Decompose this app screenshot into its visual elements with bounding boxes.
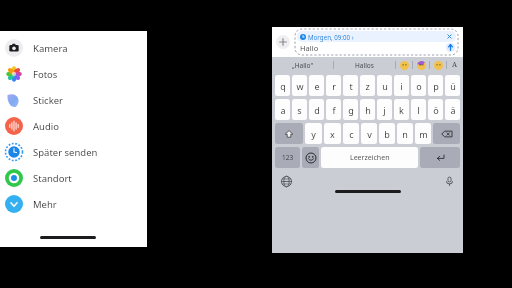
staticText: m	[419, 128, 428, 140]
button[interactable]: Diktieren	[442, 174, 456, 188]
button[interactable]: Morgen, 09:00 ›	[295, 29, 458, 55]
button[interactable]: x	[324, 123, 341, 144]
staticText: Audio	[33, 120, 59, 133]
staticText: ü	[450, 80, 456, 92]
button[interactable]: Leerzeichen	[321, 147, 418, 168]
button[interactable]: Sticker	[0, 87, 147, 113]
button[interactable]: Emoji	[430, 57, 446, 73]
staticText: d	[314, 104, 320, 116]
staticText: s	[297, 104, 302, 116]
staticText: h	[365, 104, 371, 116]
button[interactable]: g	[343, 99, 358, 120]
button[interactable]: Fotos	[0, 61, 147, 87]
staticText: Sticker	[33, 94, 64, 107]
staticText: Hallos	[355, 61, 374, 70]
button[interactable]: Eingabe	[420, 147, 460, 168]
staticText: ö	[433, 104, 439, 116]
staticText: y	[311, 128, 316, 140]
button[interactable]: Emoji	[413, 57, 429, 73]
staticText: c	[349, 128, 354, 140]
staticText: ä	[450, 104, 456, 116]
staticText: r	[332, 80, 336, 92]
button[interactable]: ö	[428, 99, 443, 120]
button[interactable]: r	[326, 75, 341, 96]
button[interactable]: e	[309, 75, 324, 96]
button[interactable]: Audio	[0, 113, 147, 139]
staticText: p	[433, 80, 439, 92]
staticText: Mehr	[33, 198, 57, 211]
button[interactable]: c	[343, 123, 359, 144]
button[interactable]: u	[377, 75, 392, 96]
button[interactable]: y	[305, 123, 322, 144]
staticText: q	[280, 80, 286, 92]
button[interactable]: p	[428, 75, 443, 96]
staticText: a	[280, 104, 286, 116]
staticText: Fotos	[33, 68, 58, 81]
button[interactable]: Tastatur wechseln	[279, 174, 293, 188]
button[interactable]: f	[326, 99, 341, 120]
button[interactable]: b	[379, 123, 395, 144]
button[interactable]: s	[292, 99, 307, 120]
button[interactable]: 123	[275, 147, 300, 168]
button[interactable]: k	[394, 99, 409, 120]
staticText: Leerzeichen	[350, 153, 390, 163]
staticText: g	[348, 104, 354, 116]
button[interactable]: Löschen	[433, 123, 460, 144]
button[interactable]: o	[411, 75, 426, 96]
staticText: Standort	[33, 172, 72, 185]
button[interactable]: n	[397, 123, 413, 144]
staticText: „Hallo"	[292, 61, 314, 70]
staticText: Morgen, 09:00 ›	[308, 33, 354, 41]
button[interactable]: ü	[445, 75, 460, 96]
button[interactable]: Standort	[0, 165, 147, 191]
staticText: w	[296, 80, 304, 92]
staticText: i	[400, 80, 403, 92]
button[interactable]: a	[275, 99, 290, 120]
staticText: b	[384, 128, 390, 140]
staticText: o	[416, 80, 422, 92]
button[interactable]: Senden	[445, 42, 456, 53]
staticText: u	[382, 80, 388, 92]
button[interactable]: „Hallo"	[272, 57, 333, 73]
staticText: j	[383, 104, 386, 116]
button[interactable]: Hallos	[334, 57, 395, 73]
button[interactable]: t	[343, 75, 358, 96]
button[interactable]: j	[377, 99, 392, 120]
button[interactable]: Morgen, 09:00 ›	[297, 31, 456, 42]
button[interactable]: v	[361, 123, 377, 144]
button[interactable]: i	[394, 75, 409, 96]
staticText: v	[367, 128, 372, 140]
button[interactable]: Umschalt	[275, 123, 303, 144]
button[interactable]: w	[292, 75, 307, 96]
button[interactable]: Mehr	[0, 191, 147, 217]
button[interactable]: h	[360, 99, 375, 120]
staticText: Kamera	[33, 42, 68, 55]
staticText: x	[330, 128, 335, 140]
button[interactable]: Emoji	[396, 57, 412, 73]
staticText: f	[332, 104, 336, 116]
button[interactable]: ä	[445, 99, 460, 120]
staticText: z	[365, 80, 370, 92]
staticText: l	[417, 104, 420, 116]
staticText: n	[402, 128, 408, 140]
staticText: k	[399, 104, 404, 116]
staticText: t	[349, 80, 353, 92]
button[interactable]: Kamera	[0, 35, 147, 61]
staticText: e	[314, 80, 320, 92]
button[interactable]: Emoji	[302, 147, 319, 168]
button[interactable]: Anhang hinzufügen	[276, 35, 290, 49]
staticText: 123	[282, 153, 294, 162]
staticText: Hallo	[300, 43, 319, 53]
button[interactable]: l	[411, 99, 426, 120]
button[interactable]: q	[275, 75, 290, 96]
button[interactable]: z	[360, 75, 375, 96]
button[interactable]: m	[415, 123, 431, 144]
staticText: Später senden	[33, 146, 98, 159]
button[interactable]: d	[309, 99, 324, 120]
button[interactable]: Später senden	[0, 139, 147, 165]
staticText: A	[452, 60, 458, 70]
button[interactable]: Formatierung	[447, 57, 463, 73]
button[interactable]: Entfernen	[446, 33, 453, 40]
